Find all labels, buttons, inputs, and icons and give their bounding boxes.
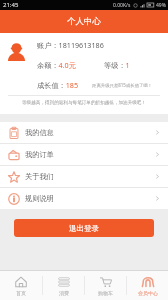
staticText: 距离升级只差815成长值了哦！ xyxy=(92,82,153,88)
staticText: 个人中心 xyxy=(67,16,101,27)
button[interactable]: 我的信息 xyxy=(0,122,168,143)
staticText: 0.00K/s xyxy=(113,2,131,9)
staticText: 我的订单 xyxy=(25,150,54,159)
staticText: 会员中心 xyxy=(138,290,158,296)
staticText: 首页 xyxy=(16,290,26,296)
button[interactable]: 关于我们 xyxy=(0,166,168,187)
staticText: 余额：4.0元 xyxy=(37,60,76,70)
staticText: 关于我们 xyxy=(25,172,54,181)
staticText: 账户：18119613186 xyxy=(37,40,104,50)
staticText: 退出登录 xyxy=(69,224,99,233)
staticText: 等级越高，得到的返利与每笔订单的折扣越低，加油升级吧！ xyxy=(22,100,147,106)
staticText: 成长值：185 xyxy=(37,80,79,90)
button[interactable]: 首页 xyxy=(0,271,42,300)
staticText: 49% xyxy=(156,2,166,9)
staticText: 等级：1 xyxy=(104,60,130,70)
button[interactable]: 消费 xyxy=(43,271,84,300)
button[interactable]: 会员中心 xyxy=(127,271,168,300)
button[interactable]: 我的订单 xyxy=(0,144,168,165)
staticText: 购物车 xyxy=(98,290,113,296)
button[interactable]: 规则说明 xyxy=(0,188,168,209)
staticText: 消费 xyxy=(59,290,69,296)
staticText: 21:45 xyxy=(3,1,19,9)
staticText: 规则说明 xyxy=(25,194,54,203)
button[interactable]: 购物车 xyxy=(85,271,126,300)
staticText: 我的信息 xyxy=(25,128,54,137)
button[interactable]: 退出登录 xyxy=(14,219,154,237)
